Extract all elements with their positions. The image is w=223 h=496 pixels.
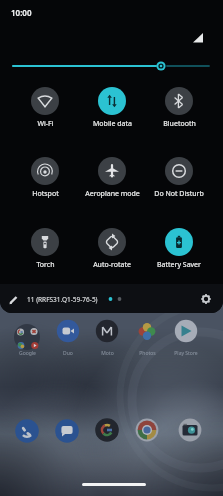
staticText: Moto bbox=[101, 350, 114, 357]
button[interactable] bbox=[98, 157, 126, 185]
button[interactable] bbox=[4, 289, 24, 309]
button[interactable] bbox=[196, 289, 216, 309]
staticText: Auto-rotate bbox=[93, 260, 131, 270]
button[interactable] bbox=[31, 228, 59, 256]
button[interactable] bbox=[98, 228, 126, 256]
staticText: Hotspot bbox=[32, 189, 59, 199]
staticText: Aeroplane mode bbox=[85, 189, 140, 199]
staticText: Bluetooth bbox=[163, 119, 196, 129]
staticText: Wi-Fi bbox=[37, 119, 54, 129]
staticText: Play Store bbox=[174, 350, 198, 357]
button[interactable] bbox=[165, 157, 193, 185]
button[interactable] bbox=[165, 87, 193, 115]
staticText: Battery Saver bbox=[157, 260, 201, 270]
staticText: Duo bbox=[63, 350, 73, 357]
staticText: Do Not Disturb bbox=[154, 189, 204, 199]
button[interactable] bbox=[31, 157, 59, 185]
staticText: Mobile data bbox=[93, 119, 132, 129]
button[interactable] bbox=[98, 87, 126, 115]
button[interactable] bbox=[82, 483, 146, 486]
button[interactable] bbox=[165, 228, 193, 256]
staticText: 11 (RRFS31.Q1-59-76-5) bbox=[27, 295, 98, 304]
staticText: Photos bbox=[139, 350, 156, 357]
button[interactable] bbox=[31, 87, 59, 115]
staticText: Torch bbox=[36, 260, 55, 270]
staticText: Google bbox=[19, 350, 36, 357]
staticText: 10:00 bbox=[11, 7, 32, 18]
